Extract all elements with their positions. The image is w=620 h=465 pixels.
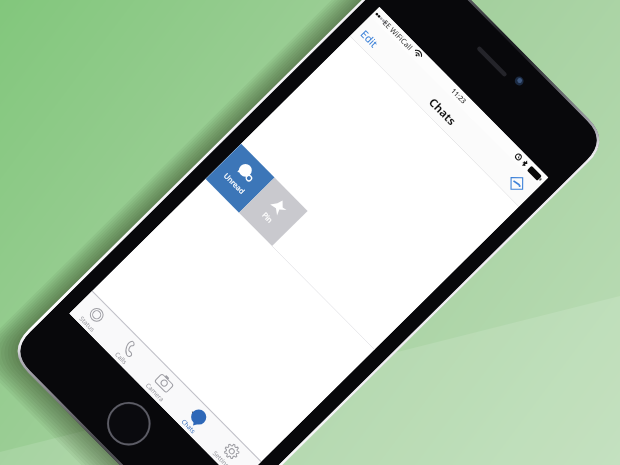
button[interactable] <box>0 0 620 465</box>
